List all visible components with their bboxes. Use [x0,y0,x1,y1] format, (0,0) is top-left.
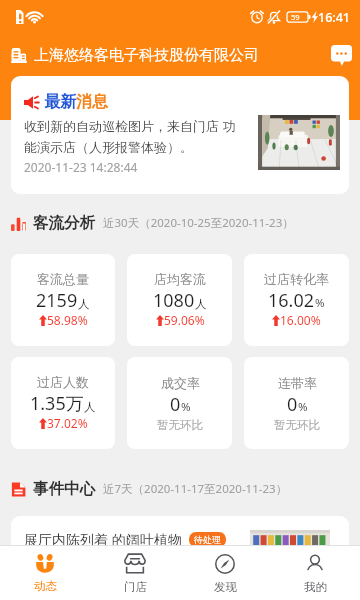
button[interactable]: 过店转化率 [244,254,349,346]
staticText: 近7天（2020-11-17至2020-11-23） [103,481,288,497]
staticText: 1.35万 [30,391,84,416]
staticText: 成交率 [161,375,200,391]
button[interactable]: Messages [326,40,356,70]
staticText: 我的 [304,580,327,594]
staticText: 2159 [36,288,78,313]
staticText: 最新 [44,92,76,112]
staticText: 展厅内陈列着 的阔叶植物 [24,530,182,549]
button[interactable]: 店均客流 [127,254,232,346]
staticText: % [315,295,325,311]
staticText: 59 [291,12,300,22]
staticText: 过店转化率 [264,271,329,287]
staticText: 连带率 [278,375,317,391]
staticText: % [181,399,191,415]
button[interactable]: 发现 [180,546,270,600]
staticText: 0 [170,392,181,417]
staticText: 消息 [76,92,108,112]
staticText: 过店人数 [37,374,89,390]
staticText: 客流分析 [33,213,95,233]
staticText: 人 [195,297,207,311]
staticText: 16:41 [318,9,351,26]
staticText: 0 [287,392,298,417]
staticText: 人 [78,297,90,311]
button[interactable]: 动态 [0,546,90,600]
staticText: 2020-11-23 14:28:44 [24,159,138,175]
staticText: 16.00% [280,312,321,328]
button[interactable]: 连带率 [244,357,349,449]
staticText: % [298,399,308,415]
button[interactable]: 展厅内陈列着 的阔叶植物 [11,516,349,600]
staticText: 客流总量 [37,271,89,287]
staticText: 暂无环比 [157,418,203,432]
staticText: 暂无环比 [274,418,320,432]
staticText: 待处理 [194,534,221,545]
staticText: 事件中心 [33,479,95,499]
staticText: 1080 [153,288,195,313]
button[interactable]: 最新 [11,76,349,194]
staticText: 发现 [214,580,237,594]
button[interactable]: 我的 [270,546,360,600]
staticText: 收到新的自动巡检图片，来自门店 功 能演示店（人形报警体验）。 [24,117,236,156]
staticText: 58.98% [47,312,88,328]
staticText: 人 [84,400,96,414]
button[interactable]: 成交率 [127,357,232,449]
staticText: 近30天（2020-10-25至2020-11-23） [103,215,294,231]
staticText: 37.02% [47,415,88,431]
staticText: 门店 [124,580,147,594]
staticText: 店均客流 [154,271,206,287]
staticText: 上海悠络客电子科技股份有限公司 [34,46,259,65]
staticText: 16.02 [268,288,315,313]
staticText: 动态 [34,579,57,593]
button[interactable]: 过店人数 [11,357,115,449]
staticText: 59.06% [164,312,205,328]
button[interactable]: 客流总量 [11,254,115,346]
button[interactable]: 门店 [90,546,180,600]
